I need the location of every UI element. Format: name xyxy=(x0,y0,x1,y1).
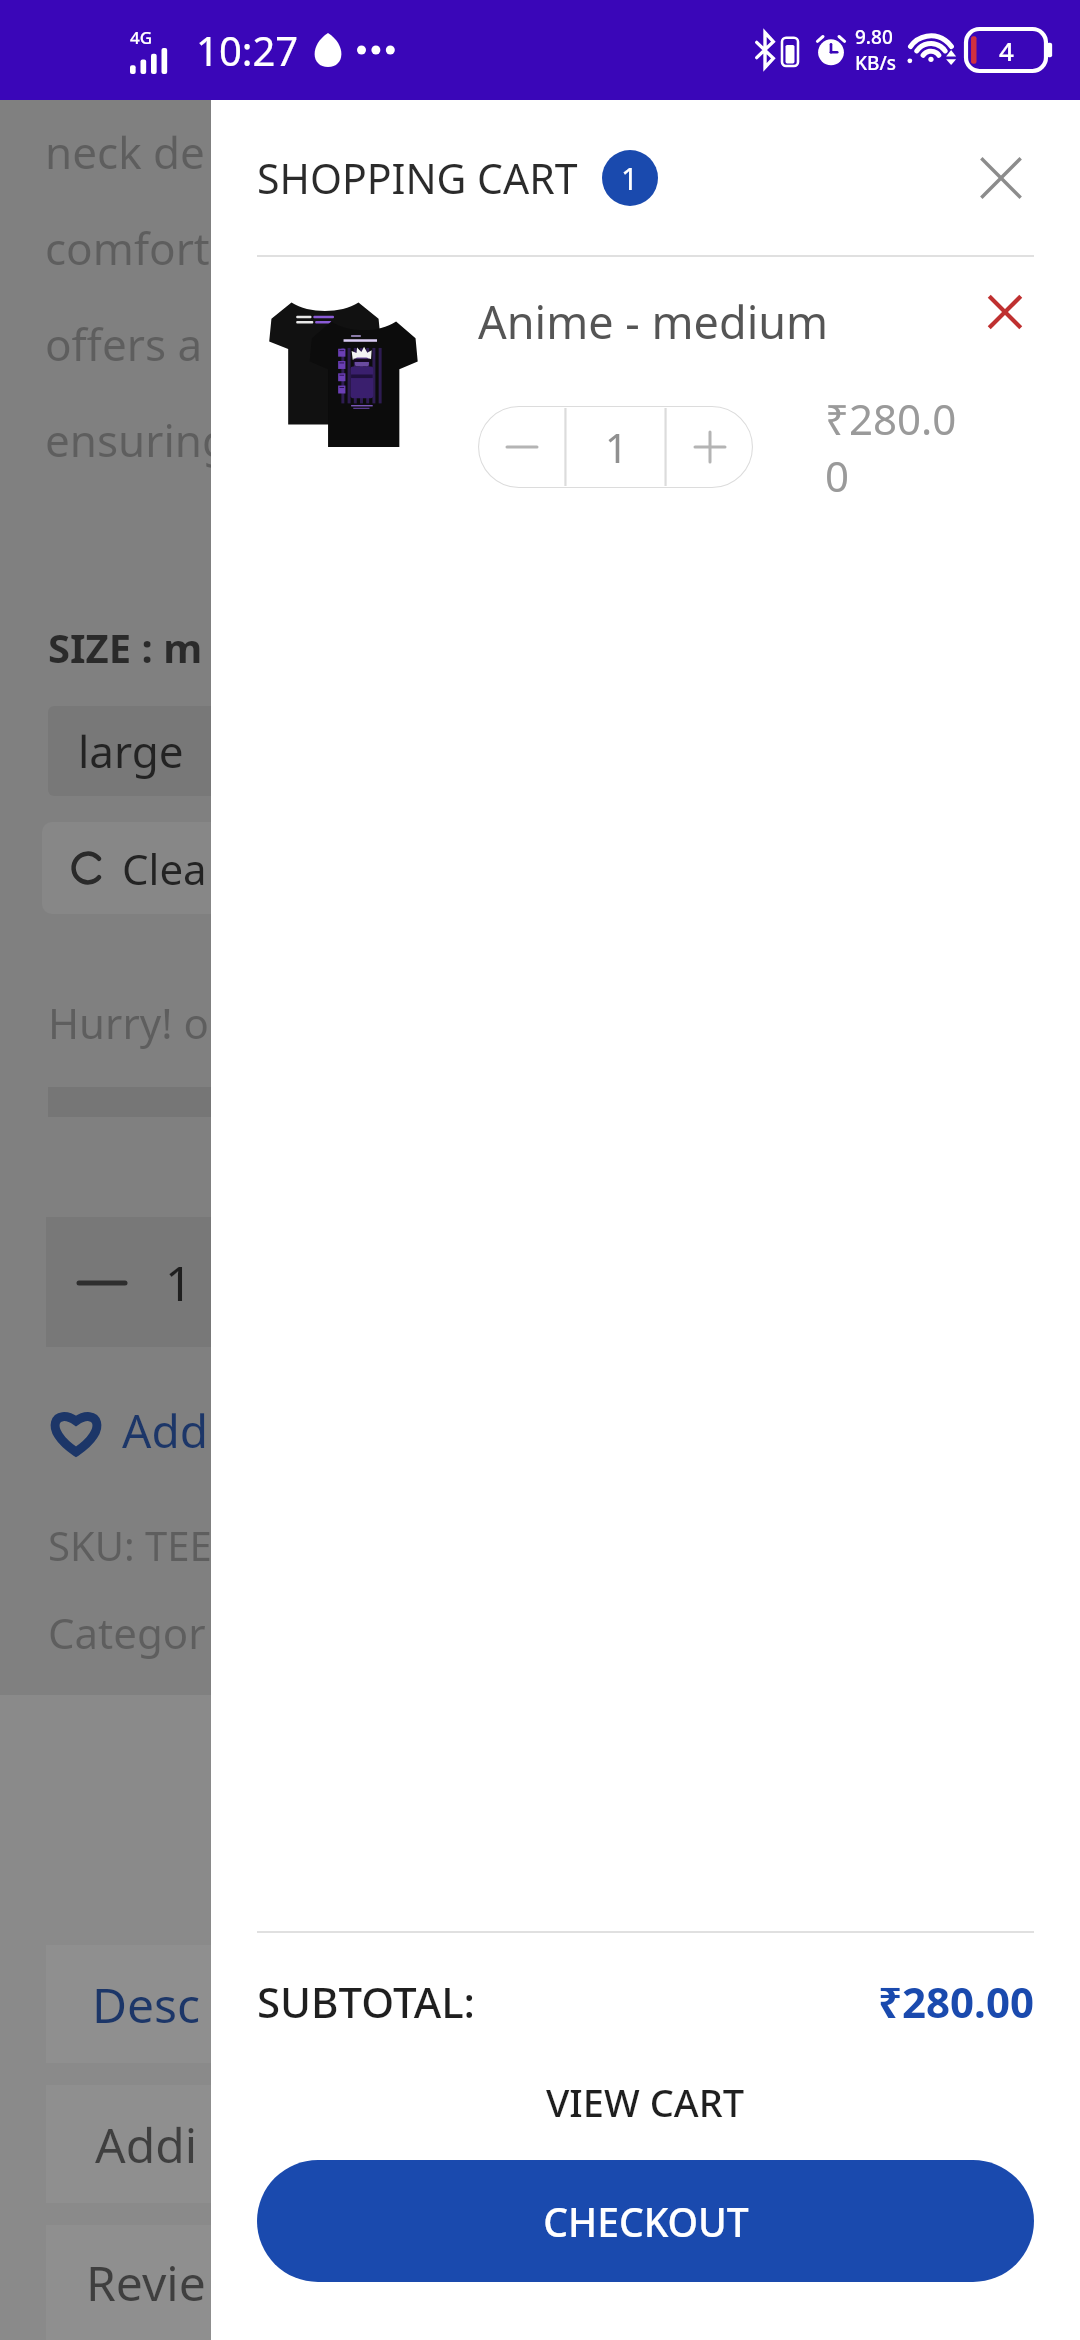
staticText: ensuring xyxy=(45,410,230,470)
staticText: comfort xyxy=(45,218,210,278)
staticText: Categor xyxy=(48,1604,206,1661)
button[interactable]: Close cart xyxy=(962,139,1040,217)
staticText: offers a xyxy=(45,314,203,374)
button[interactable]: CHECKOUT xyxy=(257,2160,1034,2282)
staticText: large xyxy=(78,721,184,781)
staticText: Clea xyxy=(122,840,207,897)
staticText: Addi xyxy=(95,2112,198,2177)
button[interactable]: 1 xyxy=(602,150,658,206)
staticText: VIEW CART xyxy=(546,2076,745,2128)
staticText: SUBTOTAL: xyxy=(257,1973,476,2030)
staticText: Add xyxy=(122,1399,208,1462)
staticText: KB/s xyxy=(855,50,896,76)
staticText: Hurry! o xyxy=(48,994,209,1051)
button[interactable]: Remove item xyxy=(970,277,1040,347)
staticText: ₹280.00 xyxy=(878,1973,1034,2030)
staticText: ₹280.00 xyxy=(825,390,970,504)
staticText: SIZE : m xyxy=(48,620,203,674)
staticText: neck de xyxy=(45,122,205,182)
staticText: Revie xyxy=(86,2250,206,2315)
button[interactable]: Decrease quantity xyxy=(478,406,566,488)
staticText: 4G xyxy=(130,26,153,49)
staticText: Anime - medium xyxy=(478,291,829,352)
staticText: 1 xyxy=(165,1250,193,1315)
staticText: 10:27 xyxy=(196,23,299,77)
staticText: 4 xyxy=(999,33,1014,68)
staticText: SKU: TEE xyxy=(48,1518,212,1572)
button[interactable]: VIEW CART xyxy=(211,2072,1080,2132)
staticText: CHECKOUT xyxy=(543,2195,749,2248)
button[interactable]: Increase quantity xyxy=(666,406,753,488)
staticText: SHOPPING CART xyxy=(257,150,578,206)
staticText: Desc xyxy=(92,1972,201,2037)
staticText: 9.80 xyxy=(855,24,893,50)
staticText: 1 xyxy=(605,420,628,474)
staticText: 1 xyxy=(621,158,639,199)
